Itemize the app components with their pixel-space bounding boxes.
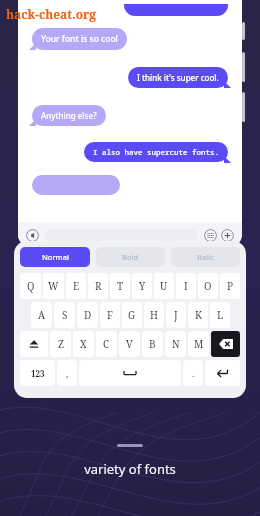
button[interactable]: D xyxy=(77,302,98,328)
button[interactable]: A xyxy=(31,302,52,328)
staticText: F xyxy=(107,308,113,322)
staticText: R xyxy=(95,279,102,293)
button[interactable]: J xyxy=(166,302,186,328)
button[interactable]: Your font is so cool xyxy=(32,28,127,50)
button[interactable]: U xyxy=(154,273,174,299)
button[interactable]: I think it's super cool. xyxy=(128,67,228,88)
staticText: S xyxy=(62,308,68,322)
staticText: Anything else? xyxy=(41,110,97,121)
staticText: O xyxy=(204,279,212,293)
staticText: Z xyxy=(58,337,64,351)
staticText: hack-cheat.org xyxy=(6,6,97,22)
staticText: K xyxy=(195,308,202,322)
staticText: Your font is so cool xyxy=(41,33,118,45)
staticText: C xyxy=(103,337,110,351)
button[interactable]: Bold xyxy=(96,247,165,267)
button[interactable]: Normal xyxy=(20,247,90,267)
staticText: A xyxy=(38,308,46,322)
staticText: H xyxy=(150,308,158,322)
staticText: E xyxy=(73,279,80,293)
staticText: Bold xyxy=(122,252,139,262)
button[interactable]: P xyxy=(220,273,240,299)
button[interactable]: K xyxy=(188,302,208,328)
staticText: 123 xyxy=(31,368,45,379)
button[interactable]: Z xyxy=(50,331,71,357)
button[interactable]: W xyxy=(43,273,64,299)
staticText: . xyxy=(192,367,195,379)
staticText: N xyxy=(172,337,180,351)
staticText: I xyxy=(184,279,188,293)
button[interactable]: M xyxy=(188,331,209,357)
button[interactable]: O xyxy=(198,273,218,299)
staticText: B xyxy=(149,337,156,351)
staticText: T xyxy=(117,279,124,293)
button[interactable]: L xyxy=(210,302,230,328)
button[interactable]: E xyxy=(66,273,86,299)
button[interactable]: V xyxy=(119,331,140,357)
staticText: V xyxy=(126,337,133,351)
button[interactable]: S xyxy=(54,302,75,328)
staticText: U xyxy=(160,279,168,293)
button[interactable]: X xyxy=(73,331,94,357)
staticText: G xyxy=(128,308,136,322)
button[interactable]: Enter xyxy=(205,360,240,386)
staticText: Y xyxy=(139,279,146,293)
button[interactable]: Anything else? xyxy=(32,105,106,126)
staticText: D xyxy=(84,308,92,322)
button[interactable]: 123 xyxy=(20,360,55,386)
button[interactable]: I also have supercute fonts. xyxy=(84,142,228,162)
button[interactable]: Shift xyxy=(20,331,48,357)
button[interactable]: B xyxy=(142,331,163,357)
staticText: P xyxy=(227,279,234,293)
button[interactable]: H xyxy=(144,302,164,328)
staticText: variety of fonts xyxy=(84,460,176,478)
staticText: X xyxy=(80,337,87,351)
button[interactable]: Y xyxy=(132,273,152,299)
button[interactable]: Q xyxy=(20,273,41,299)
staticText: Italic xyxy=(197,252,215,262)
staticText: L xyxy=(217,308,224,322)
staticText: I also have supercute fonts. xyxy=(93,147,219,157)
button[interactable]: Space xyxy=(79,360,181,386)
button[interactable]: Voice xyxy=(26,229,39,242)
staticText: M xyxy=(194,337,204,351)
staticText: I think it's super cool. xyxy=(137,72,219,83)
staticText: J xyxy=(174,308,178,322)
button[interactable]: Keyboard xyxy=(204,229,217,242)
button[interactable]: Italic xyxy=(171,247,240,267)
staticText: , xyxy=(66,367,69,379)
button[interactable]: G xyxy=(122,302,142,328)
staticText: Q xyxy=(27,279,35,293)
button[interactable]: T xyxy=(110,273,130,299)
staticText: Normal xyxy=(42,252,69,262)
button[interactable]: . xyxy=(183,360,203,386)
button[interactable]: N xyxy=(165,331,186,357)
button[interactable]: I xyxy=(176,273,196,299)
button[interactable]: Add xyxy=(221,229,234,242)
staticText: W xyxy=(48,279,59,293)
button[interactable]: , xyxy=(57,360,77,386)
button[interactable]: C xyxy=(96,331,117,357)
button[interactable]: R xyxy=(88,273,108,299)
button[interactable]: F xyxy=(100,302,120,328)
button[interactable]: Backspace xyxy=(211,331,240,357)
